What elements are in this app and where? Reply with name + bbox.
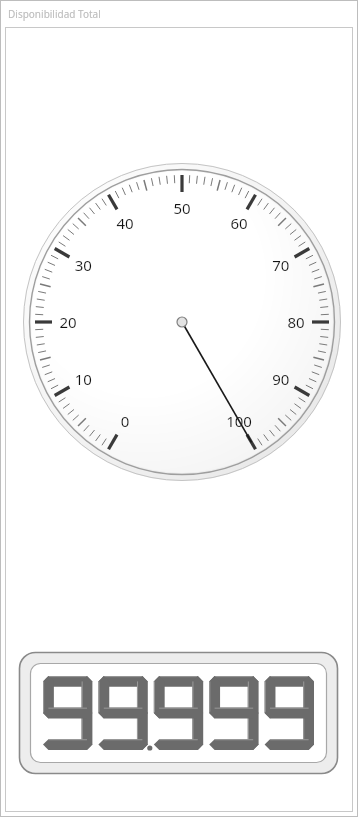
button[interactable]: Contador 99.999 [19, 652, 338, 774]
button[interactable]: Medidor de disponibilidad total [23, 163, 341, 481]
